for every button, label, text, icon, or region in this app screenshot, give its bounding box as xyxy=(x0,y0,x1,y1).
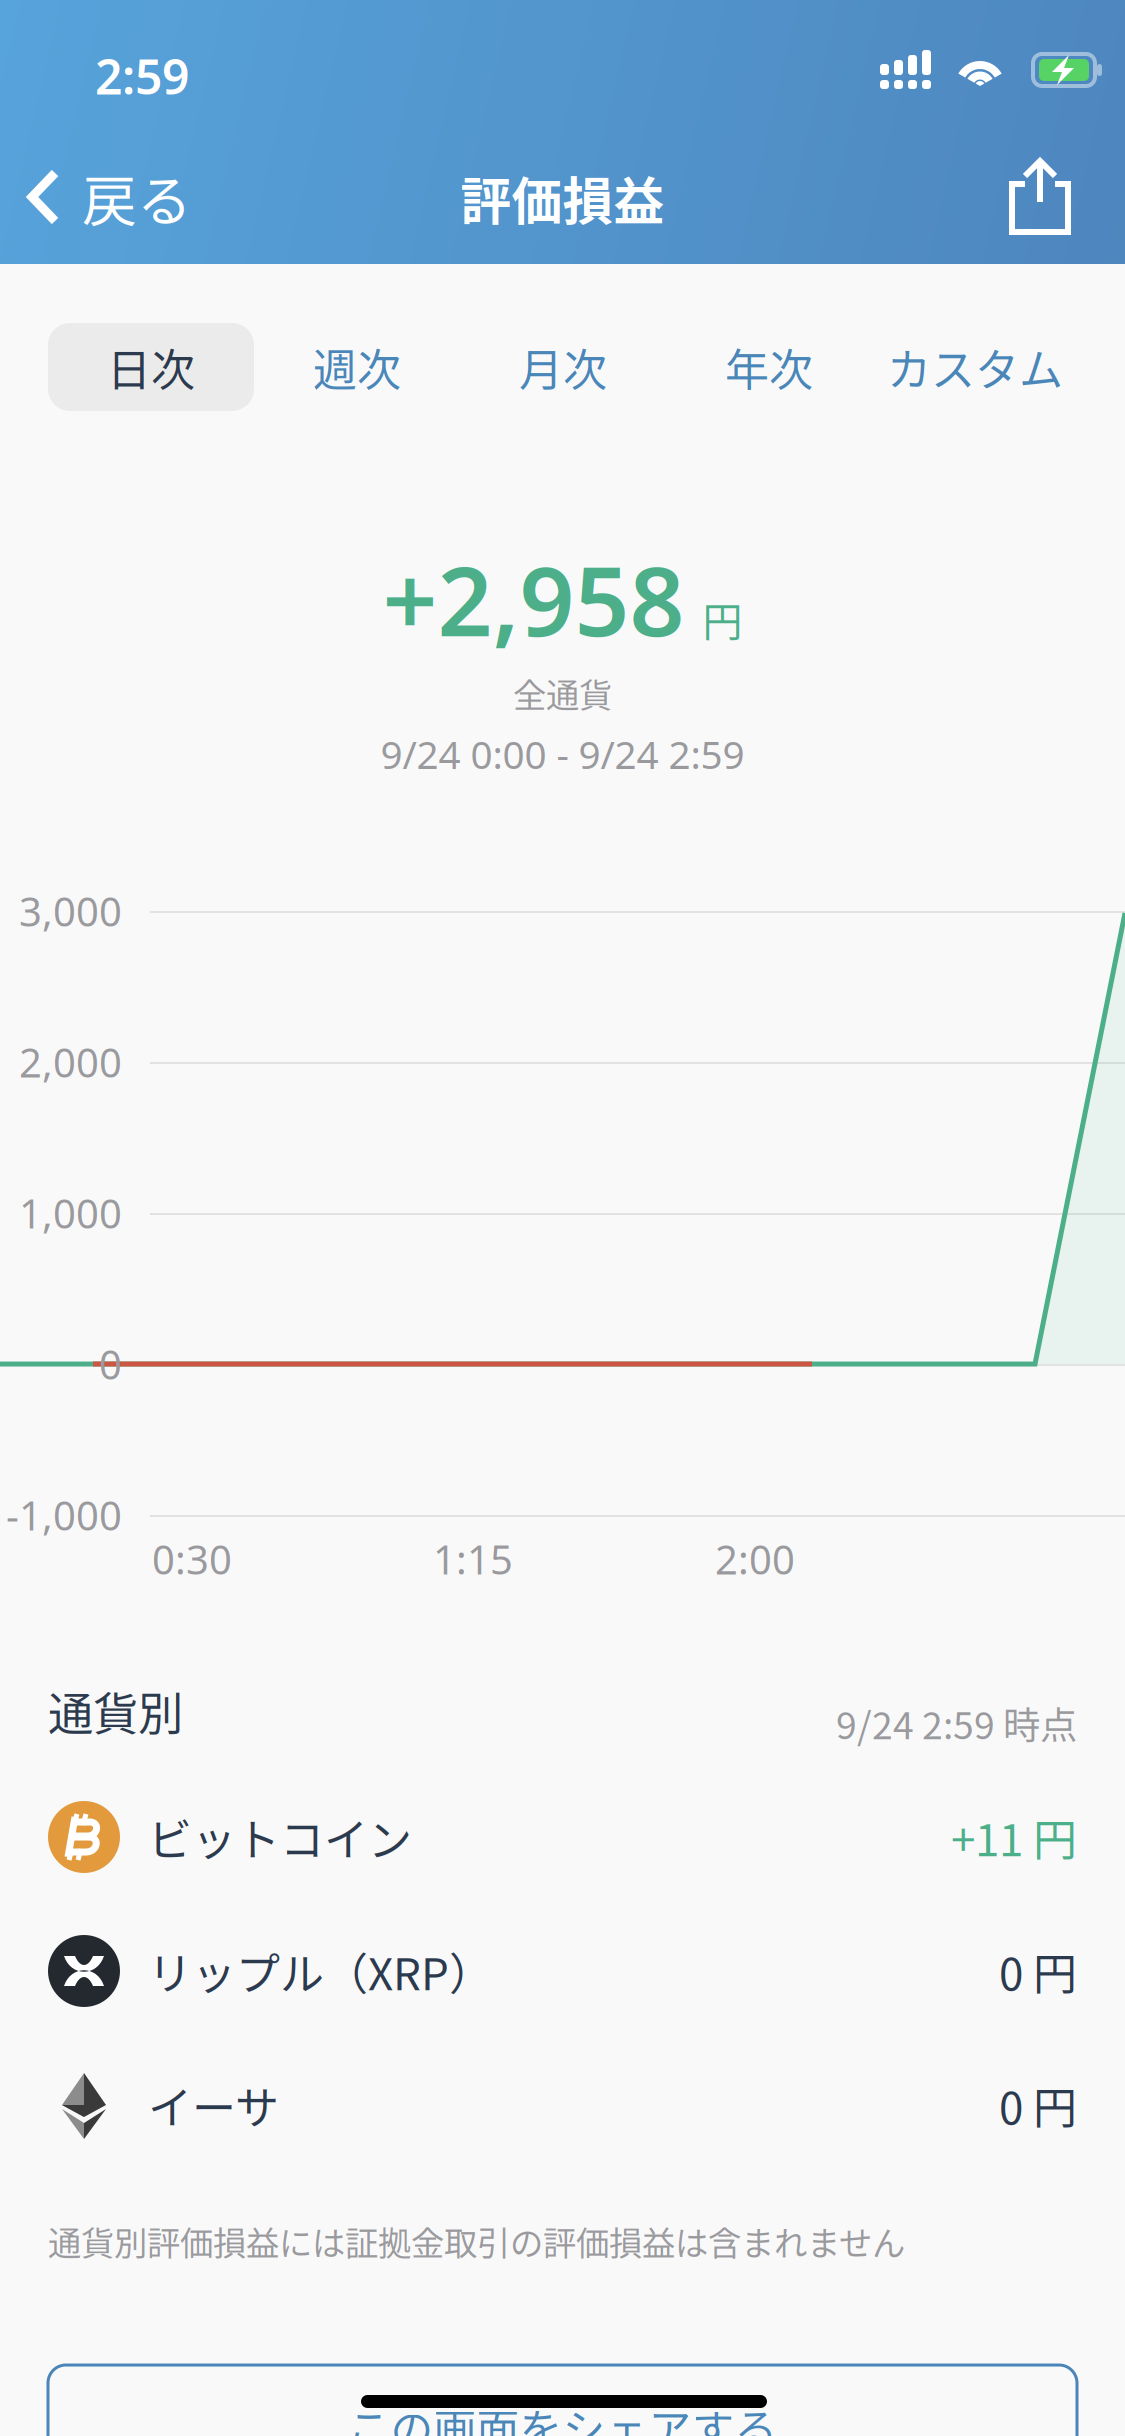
staticText: 9/24 0:00 - 9/24 2:59 xyxy=(380,728,744,780)
button[interactable]: 月次 xyxy=(460,323,666,411)
button[interactable]: 週次 xyxy=(254,323,460,411)
button[interactable]: イーサ xyxy=(0,2061,1125,2149)
staticText: 年次 xyxy=(725,335,813,399)
staticText: 日次 xyxy=(107,335,195,399)
staticText: 2:00 xyxy=(715,1532,795,1585)
staticText: 戻る xyxy=(82,157,192,237)
staticText: +2,958 xyxy=(382,535,684,663)
staticText: 通貨別評価損益には証拠金取引の評価損益は含まれません xyxy=(48,2217,905,2265)
staticText: 月次 xyxy=(519,335,607,399)
staticText: 円 xyxy=(702,590,742,648)
button[interactable]: シェア xyxy=(985,142,1095,252)
staticText: 0 円 xyxy=(999,2073,1077,2137)
staticText: -1,000 xyxy=(6,1488,122,1541)
staticText: 2,000 xyxy=(19,1035,122,1088)
staticText: 3,000 xyxy=(19,884,122,937)
staticText: リップル（XRP） xyxy=(148,1939,493,2003)
staticText: 1:15 xyxy=(433,1532,513,1585)
button[interactable]: カスタム xyxy=(872,323,1078,411)
staticText: カスタム xyxy=(887,335,1063,399)
button[interactable]: この画面をシェアする xyxy=(48,2365,1077,2436)
staticText: 9/24 2:59 時点 xyxy=(836,1696,1077,1750)
staticText: 2:59 xyxy=(95,44,189,108)
button[interactable]: 戻る xyxy=(0,141,218,253)
staticText: 0 xyxy=(99,1337,122,1390)
staticText: 0 円 xyxy=(999,1939,1077,2003)
staticText: 0:30 xyxy=(152,1532,232,1585)
button[interactable]: 年次 xyxy=(666,323,872,411)
button[interactable]: リップル（XRP） xyxy=(0,1927,1125,2015)
button[interactable]: ビットコイン xyxy=(0,1793,1125,1881)
staticText: ビットコイン xyxy=(148,1805,412,1869)
staticText: イーサ xyxy=(148,2073,279,2137)
staticText: 1,000 xyxy=(19,1186,122,1239)
staticText: この画面をシェアする xyxy=(347,2396,777,2436)
staticText: +11 円 xyxy=(951,1805,1077,1869)
staticText: 通貨別 xyxy=(48,1678,183,1744)
staticText: 全通貨 xyxy=(513,669,612,717)
staticText: 評価損益 xyxy=(460,161,664,235)
staticText: 週次 xyxy=(313,335,401,399)
button[interactable]: 日次 xyxy=(48,323,254,411)
